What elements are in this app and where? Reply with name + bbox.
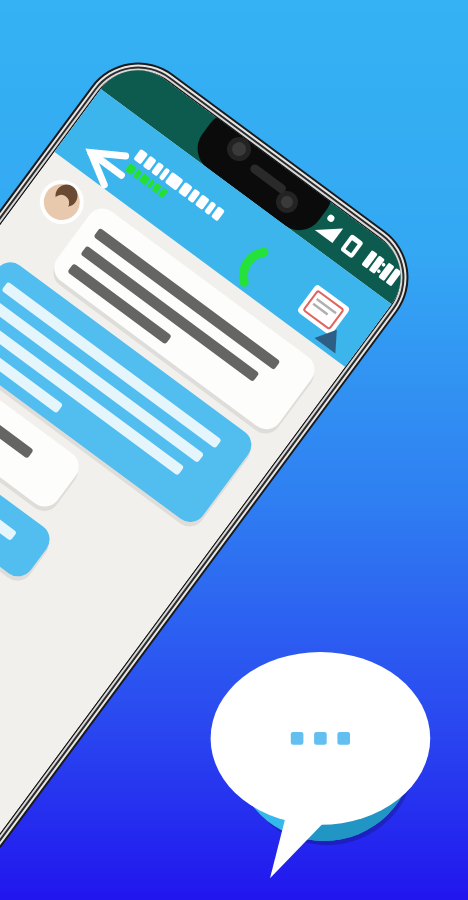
button[interactable]: Chat conversation preview — [0, 0, 468, 900]
button[interactable]: Messenger app icon — [234, 661, 414, 841]
